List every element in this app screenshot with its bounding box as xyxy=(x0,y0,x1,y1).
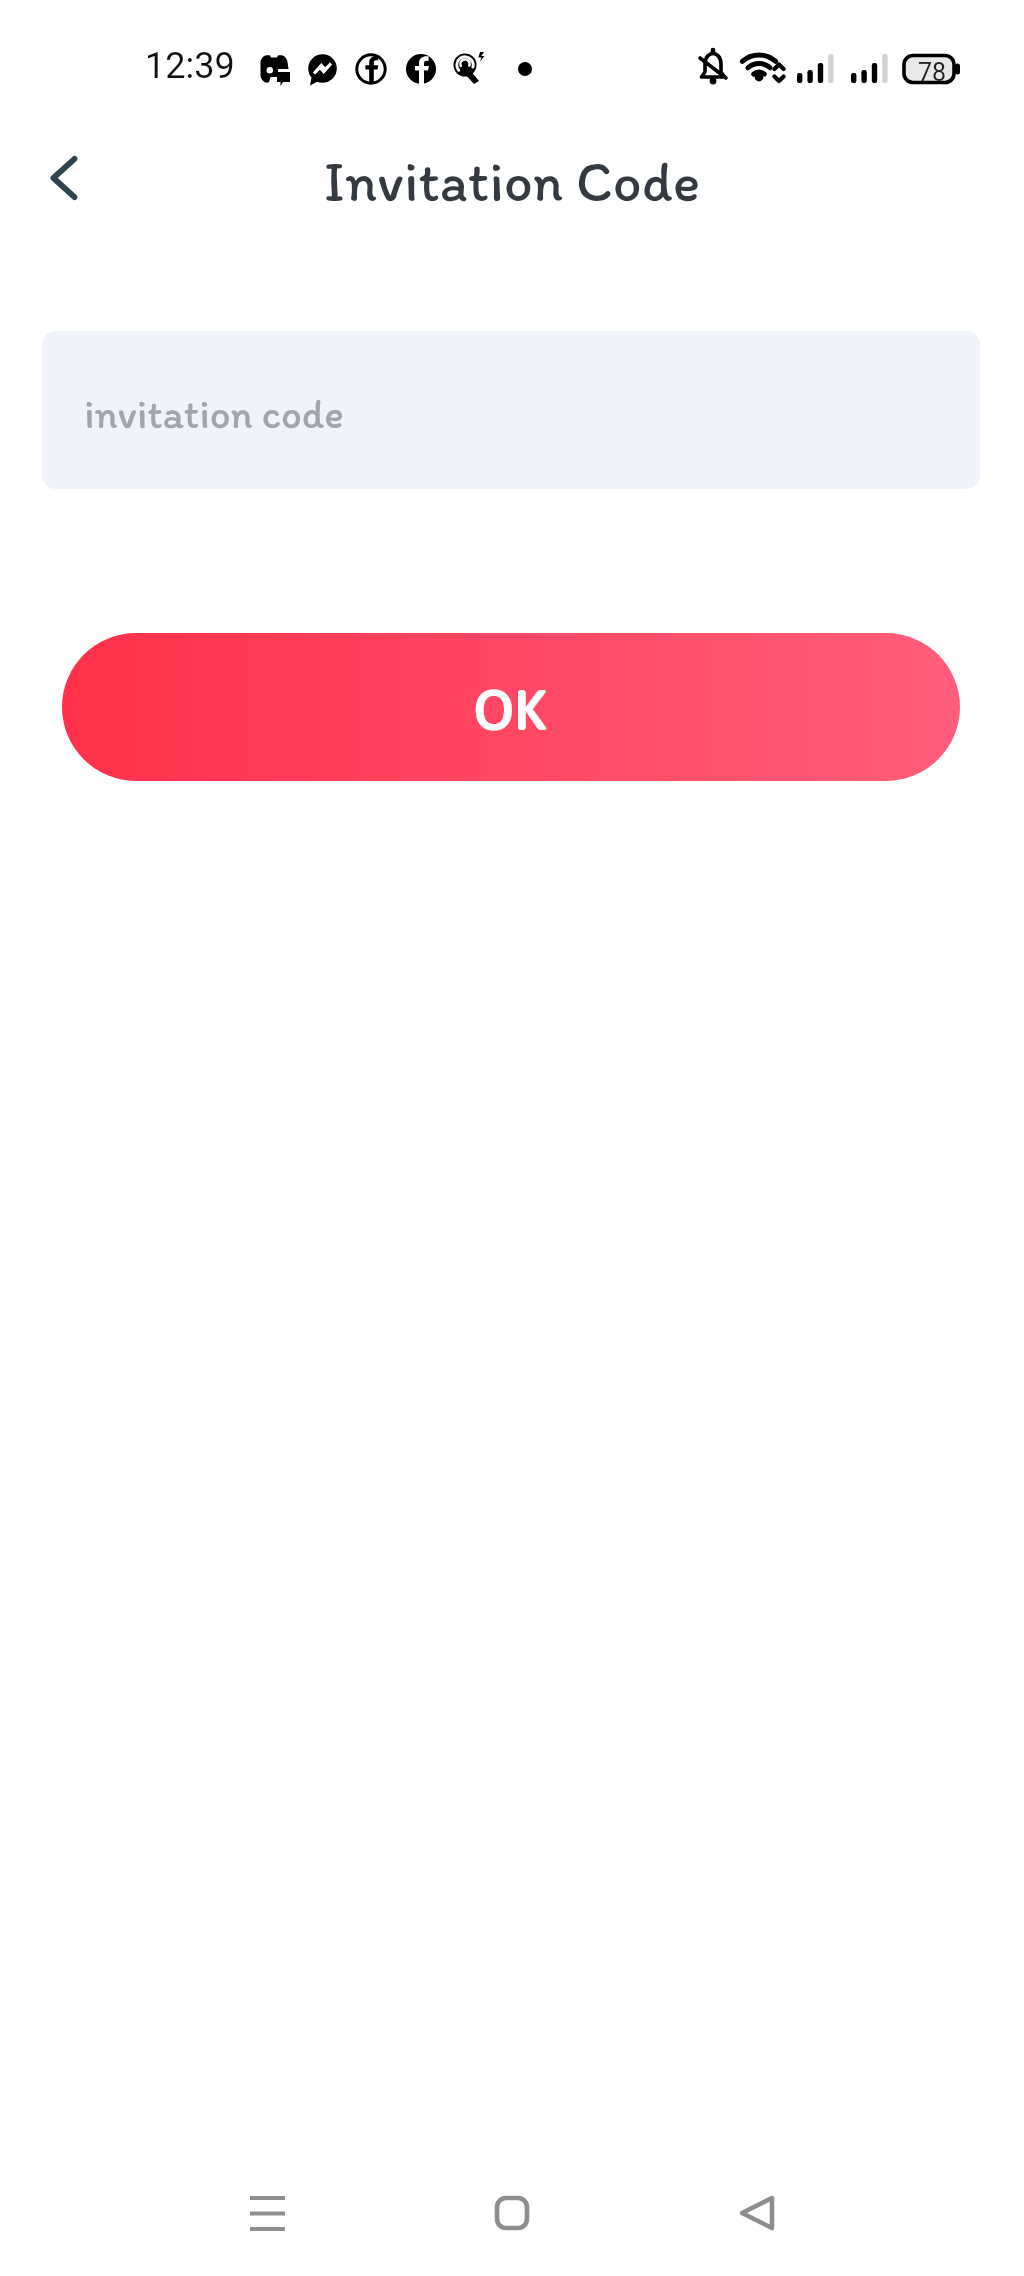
staticText: Invitation Code xyxy=(0,147,1024,215)
staticText: OK xyxy=(474,672,548,747)
staticText: 12:39 xyxy=(145,45,235,87)
button[interactable]: Home xyxy=(464,2165,560,2261)
staticText: 78 xyxy=(918,58,947,87)
button[interactable]: Recent apps xyxy=(219,2165,315,2261)
button[interactable]: Back xyxy=(709,2165,805,2261)
button[interactable]: invitation code xyxy=(42,331,980,489)
button[interactable]: OK xyxy=(62,633,960,781)
button[interactable]: Back xyxy=(15,130,111,226)
staticText: invitation code xyxy=(84,389,344,438)
